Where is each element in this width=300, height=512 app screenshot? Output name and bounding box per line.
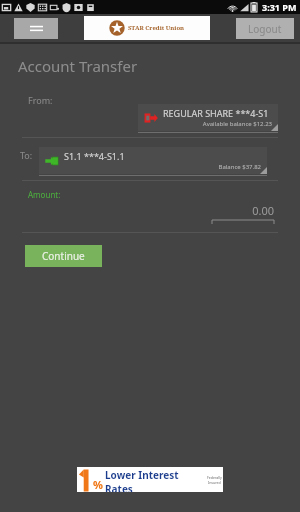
- staticText: From:: [28, 94, 53, 106]
- button[interactable]: REGULAR SHARE ***4-S1: [138, 104, 278, 131]
- staticText: 3:31 PM: [262, 1, 297, 13]
- staticText: To:: [20, 149, 33, 161]
- staticText: Federally: [207, 475, 222, 480]
- button[interactable]: Menu: [14, 18, 58, 39]
- staticText: 0.00: [212, 203, 274, 218]
- button[interactable]: Continue: [25, 245, 102, 267]
- staticText: S1.1 ***4-S1.1: [64, 150, 125, 162]
- staticText: %: [93, 477, 103, 492]
- button[interactable]: S1.1 ***4-S1.1: [39, 147, 267, 174]
- staticText: Lower Interest Rates: [105, 468, 205, 492]
- staticText: Available balance $12.23: [163, 120, 272, 128]
- button[interactable]: STAR Credit Union logo: [84, 16, 210, 40]
- staticText: Insured: [208, 480, 221, 485]
- staticText: Logout: [248, 22, 282, 36]
- staticText: Continue: [42, 249, 85, 263]
- button[interactable]: 0.00: [212, 203, 274, 224]
- staticText: Amount:: [28, 189, 61, 200]
- staticText: Account Transfer: [18, 56, 138, 76]
- button[interactable]: Logout: [236, 18, 294, 39]
- staticText: Balance $37.82: [64, 163, 261, 171]
- button[interactable]: Advertisement: 1% Lower Interest Rates: [77, 467, 223, 492]
- staticText: REGULAR SHARE ***4-S1: [163, 107, 269, 119]
- staticText: STAR Credit Union: [128, 24, 185, 32]
